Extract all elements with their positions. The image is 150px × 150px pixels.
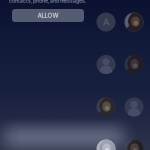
staticText: A bbox=[103, 16, 109, 28]
staticText: contacts, phone, and messages. bbox=[9, 0, 86, 4]
staticText: ALLOW bbox=[37, 12, 58, 19]
button[interactable]: ALLOW bbox=[12, 9, 84, 22]
